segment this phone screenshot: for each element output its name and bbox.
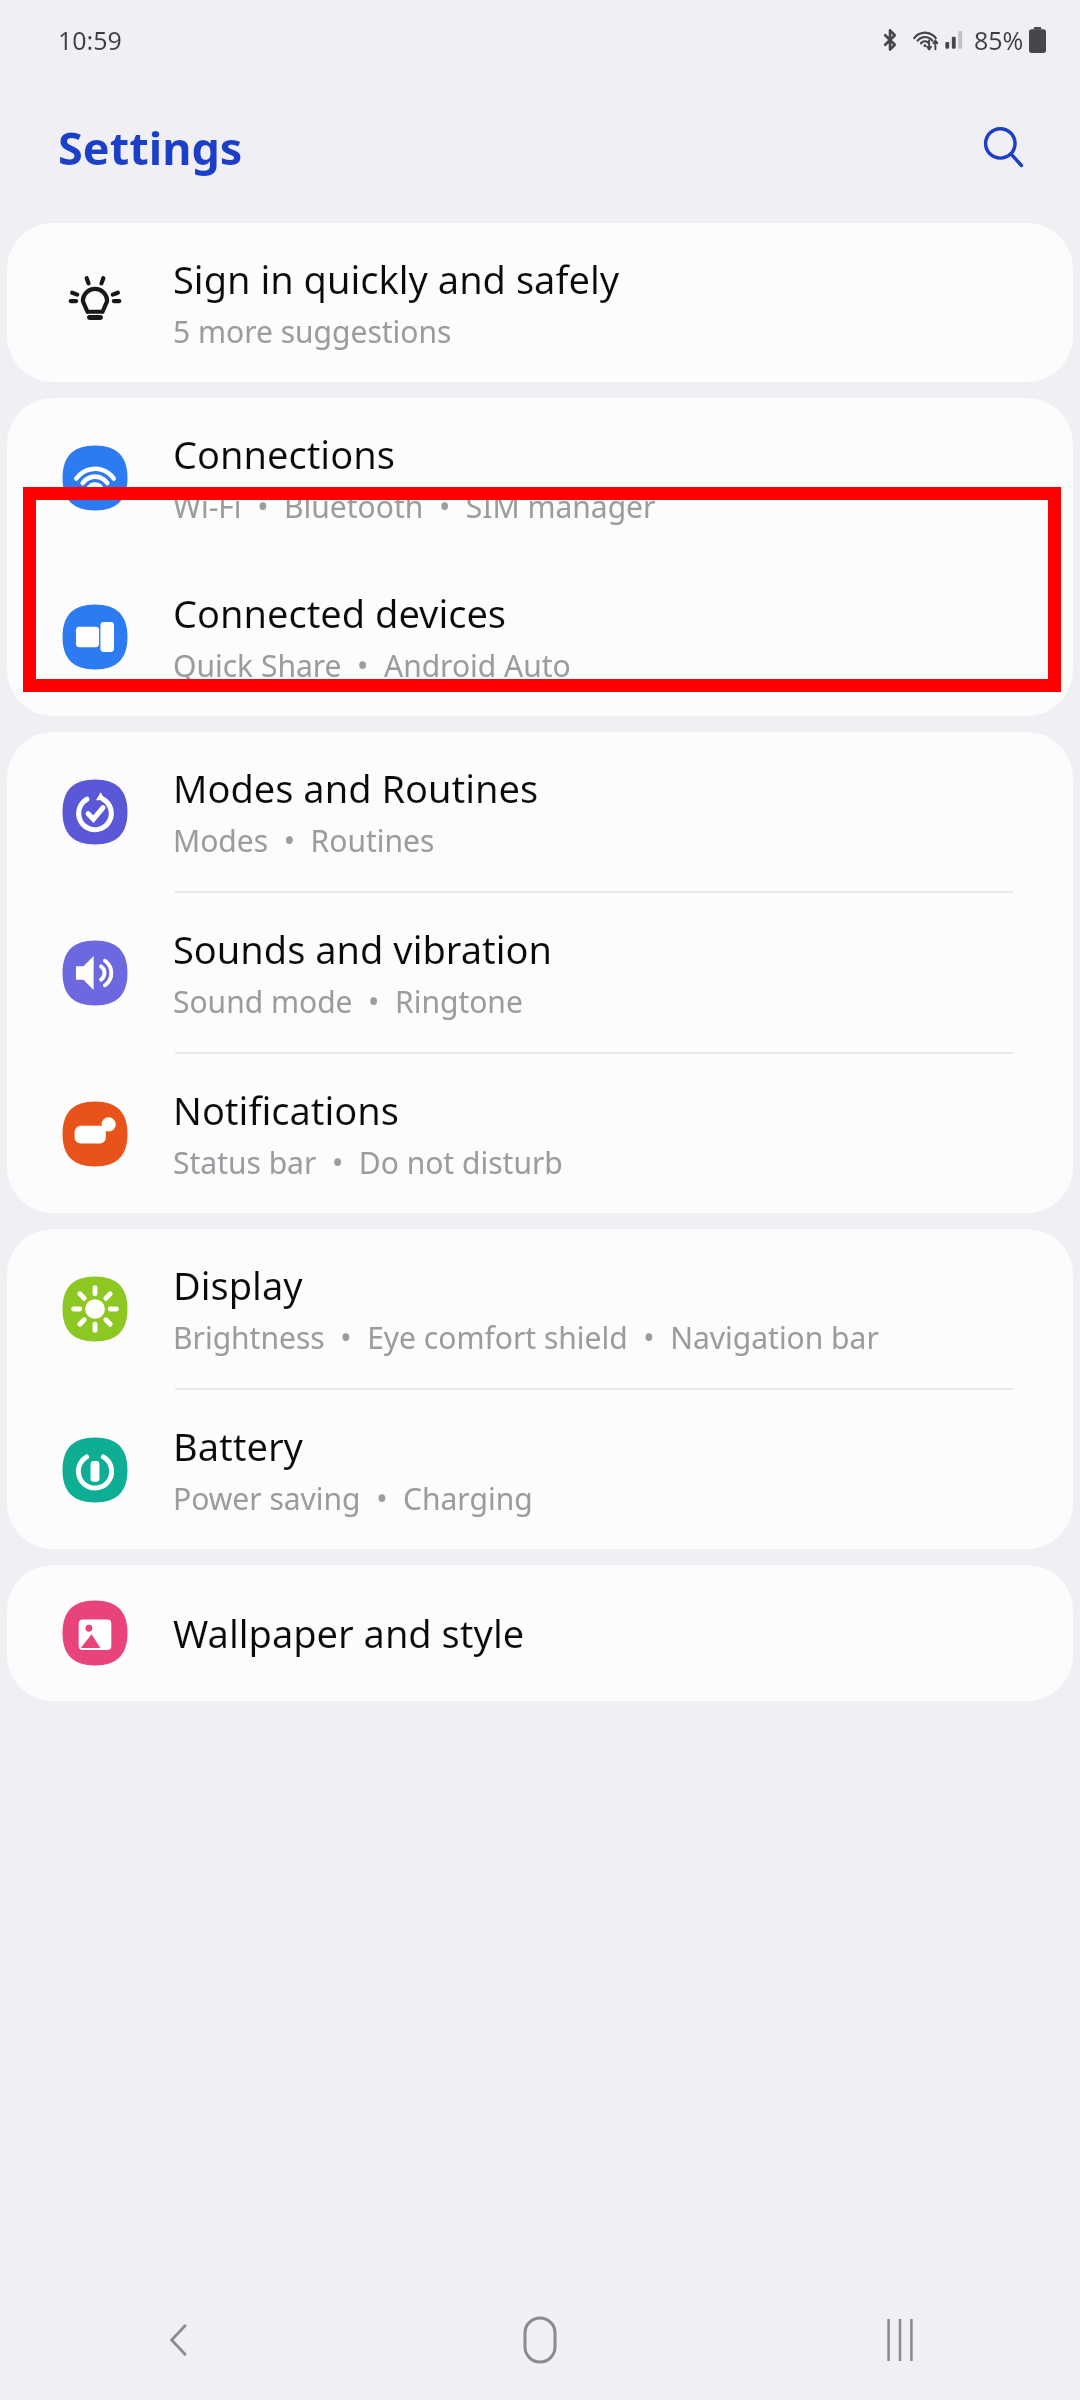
staticText: Display [173,1259,303,1311]
button[interactable]: Wallpaper and style [7,1565,1073,1701]
staticText: Modes and Routines [173,762,539,814]
staticText: 5 more suggestions [173,311,452,352]
button[interactable]: Display [7,1229,1073,1388]
staticText: Sound mode • Ringtone [173,981,523,1022]
button[interactable]: Sign in quickly and safely [7,223,1073,382]
button[interactable]: Sounds and vibration [7,893,1073,1052]
button[interactable]: Connected devices [7,557,1073,716]
button[interactable]: Battery [7,1390,1073,1549]
staticText: Modes • Routines [173,820,435,861]
staticText: Sign in quickly and safely [173,253,620,305]
staticText: Sounds and vibration [173,923,553,975]
staticText: Connections [173,428,395,480]
button[interactable]: Search [968,112,1040,184]
button[interactable]: Notifications [7,1054,1073,1213]
button[interactable]: Connections [7,398,1073,557]
staticText: Quick Share • Android Auto [173,645,571,686]
staticText: Brightness • Eye comfort shield • Naviga… [173,1317,879,1358]
staticText: Status bar • Do not disturb [173,1142,563,1183]
staticText: Wallpaper and style [173,1607,525,1659]
button[interactable]: Back [120,2280,240,2400]
staticText: Notifications [173,1084,400,1136]
button[interactable]: Home [480,2280,600,2400]
staticText: Wi-Fi • Bluetooth • SIM manager [173,486,656,527]
staticText: 10:59 [58,23,122,57]
button[interactable]: Recent apps [840,2280,960,2400]
staticText: Power saving • Charging [173,1478,533,1519]
staticText: Connected devices [173,587,507,639]
button[interactable]: Modes and Routines [7,732,1073,891]
staticText: Settings [58,117,243,178]
staticText: Battery [173,1420,303,1472]
staticText: 85% [974,23,1024,57]
